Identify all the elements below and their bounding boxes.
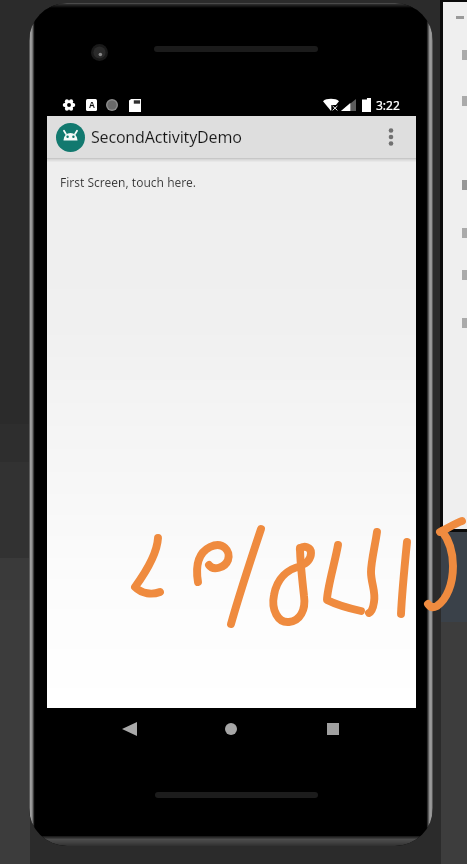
other: Settings <box>62 98 76 112</box>
button[interactable]: Back <box>114 714 144 744</box>
staticText: SecondActivityDemo <box>91 126 242 148</box>
button[interactable]: Recents <box>318 714 348 744</box>
button[interactable]: SecondActivityDemo <box>47 116 416 158</box>
staticText: 3:22 <box>376 97 400 113</box>
button[interactable]: First Screen, touch here. <box>60 174 197 190</box>
button[interactable]: More options <box>375 120 407 154</box>
staticText: A <box>89 99 95 111</box>
button[interactable]: Home <box>216 714 246 744</box>
